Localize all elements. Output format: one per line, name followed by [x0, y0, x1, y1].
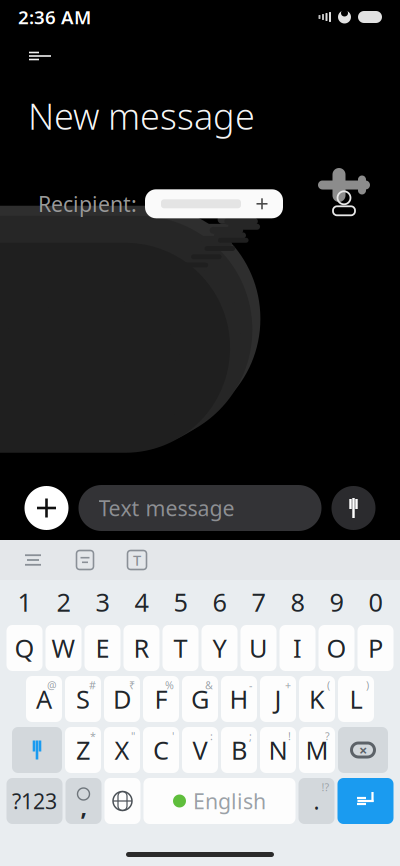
- button[interactable]: :: [182, 727, 218, 773]
- button[interactable]: Shift: [12, 727, 62, 773]
- button[interactable]: 0: [357, 585, 393, 619]
- button[interactable]: 2: [45, 585, 81, 619]
- staticText: !?: [321, 780, 329, 794]
- button[interactable]: 9: [318, 585, 354, 619]
- staticText: B: [231, 733, 247, 767]
- staticText: Y: [212, 631, 226, 665]
- button[interactable]: @: [26, 676, 62, 722]
- staticText: S: [76, 682, 90, 716]
- button[interactable]: R: [123, 625, 159, 671]
- staticText: 1: [17, 585, 31, 619]
- staticText: I: [293, 631, 302, 665]
- staticText: ×: [359, 740, 367, 760]
- staticText: 9: [329, 585, 343, 619]
- staticText: !: [288, 729, 291, 743]
- button[interactable]: Contacts: [322, 182, 366, 226]
- staticText: ': [172, 729, 174, 743]
- staticText: 7: [251, 585, 265, 619]
- staticText: O: [326, 631, 346, 665]
- staticText: &: [205, 678, 213, 692]
- staticText: Text message: [98, 494, 234, 522]
- button[interactable]: Change keyboard: [104, 778, 140, 824]
- button[interactable]: Text message: [78, 485, 321, 531]
- staticText: N: [268, 733, 287, 767]
- button[interactable]: ?: [299, 727, 335, 773]
- staticText: %: [165, 678, 174, 692]
- staticText: -: [249, 678, 252, 692]
- button[interactable]: O: [318, 625, 354, 671]
- staticText: R: [133, 631, 149, 665]
- staticText: 5: [173, 585, 187, 619]
- button[interactable]: &: [182, 676, 218, 722]
- staticText: T: [133, 550, 141, 570]
- staticText: @: [47, 678, 57, 692]
- staticText: P: [368, 631, 383, 665]
- staticText: 0: [368, 585, 382, 619]
- button[interactable]: *: [65, 727, 101, 773]
- button[interactable]: ;: [221, 727, 257, 773]
- button[interactable]: [145, 189, 283, 218]
- button[interactable]: Enter: [337, 778, 393, 824]
- staticText: ,: [80, 792, 86, 822]
- staticText: 8: [290, 585, 304, 619]
- button[interactable]: Add attachment: [24, 486, 68, 530]
- staticText: #: [89, 678, 96, 692]
- staticText: English: [193, 787, 266, 815]
- staticText: M: [305, 733, 328, 767]
- button[interactable]: U: [240, 625, 276, 671]
- button[interactable]: #: [65, 676, 101, 722]
- button[interactable]: ": [104, 727, 140, 773]
- button[interactable]: 7: [240, 585, 276, 619]
- button[interactable]: Space, English: [143, 778, 295, 824]
- button[interactable]: Back: [18, 34, 62, 78]
- staticText: Z: [76, 733, 90, 767]
- staticText: (: [327, 678, 330, 692]
- button[interactable]: Text shortcuts: [68, 543, 102, 577]
- button[interactable]: 4: [123, 585, 159, 619]
- button[interactable]: 5: [162, 585, 198, 619]
- button[interactable]: Q: [6, 625, 42, 671]
- staticText: G: [191, 682, 209, 716]
- button[interactable]: Y: [201, 625, 237, 671]
- staticText: ): [366, 678, 369, 692]
- button[interactable]: 3: [84, 585, 120, 619]
- button[interactable]: ?123: [6, 778, 62, 824]
- staticText: +: [285, 678, 291, 692]
- button[interactable]: !?: [298, 778, 334, 824]
- button[interactable]: W: [45, 625, 81, 671]
- staticText: C: [153, 733, 169, 767]
- staticText: Recipient:: [38, 190, 137, 218]
- button[interactable]: T: [162, 625, 198, 671]
- button[interactable]: ₹: [104, 676, 140, 722]
- button[interactable]: 1: [6, 585, 42, 619]
- staticText: X: [114, 733, 129, 767]
- staticText: U: [249, 631, 268, 665]
- button[interactable]: 8: [279, 585, 315, 619]
- button[interactable]: Emoji and comma: [65, 778, 101, 824]
- button[interactable]: Text formatting: [120, 543, 154, 577]
- button[interactable]: !: [260, 727, 296, 773]
- staticText: D: [113, 682, 131, 716]
- staticText: 2: [56, 585, 70, 619]
- staticText: ₹: [129, 678, 135, 692]
- staticText: W: [51, 631, 75, 665]
- button[interactable]: (: [299, 676, 335, 722]
- staticText: ?: [325, 729, 330, 743]
- button[interactable]: %: [143, 676, 179, 722]
- button[interactable]: P: [357, 625, 393, 671]
- button[interactable]: Backspace: [338, 727, 388, 773]
- staticText: 2:36 AM: [18, 5, 91, 29]
- button[interactable]: E: [84, 625, 120, 671]
- button[interactable]: Send: [331, 486, 375, 530]
- button[interactable]: 6: [201, 585, 237, 619]
- button[interactable]: I: [279, 625, 315, 671]
- staticText: *: [90, 729, 96, 743]
- button[interactable]: ': [143, 727, 179, 773]
- button[interactable]: ): [338, 676, 374, 722]
- button[interactable]: +: [260, 676, 296, 722]
- staticText: T: [173, 631, 187, 665]
- staticText: J: [274, 682, 281, 716]
- button[interactable]: -: [221, 676, 257, 722]
- button[interactable]: Clipboard: [16, 543, 50, 577]
- staticText: F: [154, 682, 167, 716]
